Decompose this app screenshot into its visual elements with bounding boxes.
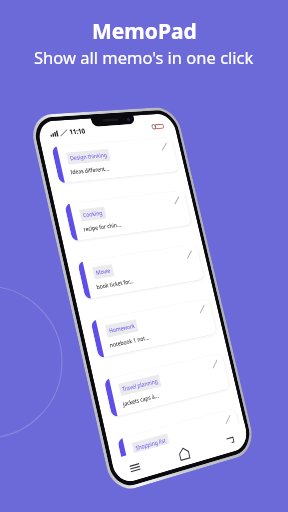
staticText: list of items... <box>135 451 168 467</box>
staticText: Travel planning <box>121 377 158 393</box>
button[interactable]: Edit <box>224 414 232 425</box>
button[interactable]: Edit <box>198 304 207 314</box>
button[interactable]: Home <box>174 442 193 464</box>
staticText: 11:10 <box>68 127 86 137</box>
staticText: jackets caps à... <box>122 391 160 408</box>
staticText: Movie <box>95 267 111 277</box>
staticText: Show all memo's in one click <box>34 46 254 68</box>
staticText: Shopping list <box>135 436 167 452</box>
staticText: Homework <box>108 322 135 335</box>
button[interactable]: Movie <box>77 244 204 300</box>
staticText: MemoPad <box>92 17 197 46</box>
button[interactable]: Edit <box>211 359 220 369</box>
button[interactable]: Travel planning <box>104 353 230 418</box>
button[interactable]: Shopping list <box>117 408 243 478</box>
staticText: notebook 1 not... <box>109 333 150 349</box>
button[interactable]: Design thinking <box>51 137 179 183</box>
staticText: recipe for chin... <box>83 221 122 233</box>
button[interactable]: Edit <box>172 196 181 205</box>
staticText: Cooking <box>82 209 104 219</box>
button[interactable]: Back <box>221 429 239 451</box>
staticText: book ticket for... <box>96 277 135 291</box>
staticText: Ideas different... <box>70 165 110 176</box>
staticText: Design thinking <box>69 151 108 162</box>
button[interactable]: Edit <box>160 142 169 151</box>
button[interactable]: Edit <box>185 250 194 259</box>
button[interactable]: Homework <box>90 298 217 358</box>
button[interactable]: Cooking <box>64 190 192 241</box>
button[interactable]: Recents <box>125 456 144 479</box>
